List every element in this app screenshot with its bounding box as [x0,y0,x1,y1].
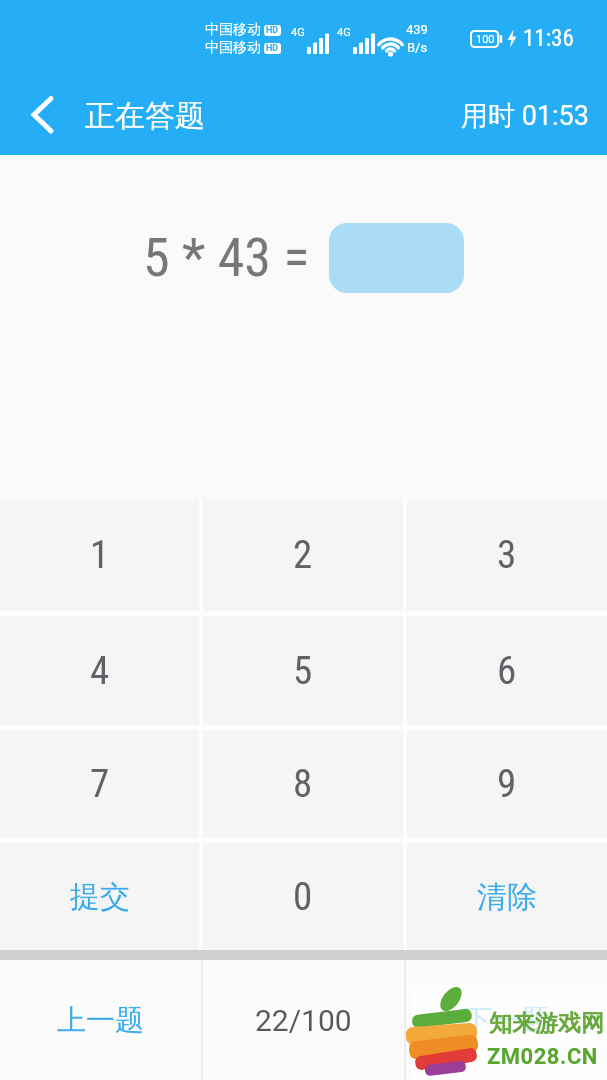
staticText: 22/100 [255,1003,352,1038]
staticText: 知来游戏网 [489,1009,604,1038]
staticText: 6 [497,648,517,694]
staticText: 用时 01:53 [461,99,589,133]
button[interactable] [0,77,78,155]
staticText: 3 [497,532,517,578]
staticText: 439 [406,22,428,37]
button[interactable]: 3 [407,499,607,611]
button[interactable]: 6 [407,616,607,725]
staticText: 提交 [70,878,130,916]
button[interactable]: 上一题 [0,960,201,1080]
staticText: 4G [337,26,351,39]
staticText: B/s [407,40,428,55]
staticText: 2 [293,532,313,578]
button[interactable]: 1 [0,499,199,611]
button[interactable]: 清除 [407,843,607,950]
staticText: 11:36 [523,25,574,52]
button[interactable]: 8 [203,730,403,838]
staticText: 8 [293,761,313,807]
staticText: 5 [293,648,313,694]
staticText: 4 [90,648,110,694]
button[interactable] [329,223,464,293]
staticText: 1 [90,532,110,578]
staticText: 正在答题 [85,97,205,135]
staticText: 9 [497,761,517,807]
button[interactable]: 5 [203,616,403,725]
staticText: 中国移动 [205,21,261,39]
staticText: ZM028.CN [487,1044,598,1070]
button[interactable]: 7 [0,730,199,838]
staticText: 100 [476,33,495,46]
button[interactable]: 4 [0,616,199,725]
staticText: 上一题 [57,1002,144,1039]
staticText: 4G [291,26,305,39]
button[interactable]: 下一题 [406,960,607,1080]
staticText: 0 [293,874,313,920]
staticText: 下一题 [463,1002,550,1039]
button[interactable]: 9 [407,730,607,838]
button[interactable]: 提交 [0,843,199,950]
button[interactable]: 2 [203,499,403,611]
staticText: 5 * 43 = [143,226,310,289]
button[interactable]: 0 [203,843,403,950]
staticText: 清除 [477,878,537,916]
staticText: 中国移动 [205,39,261,57]
staticText: 7 [90,761,110,807]
staticText: HD [266,25,279,36]
staticText: HD [266,43,279,54]
